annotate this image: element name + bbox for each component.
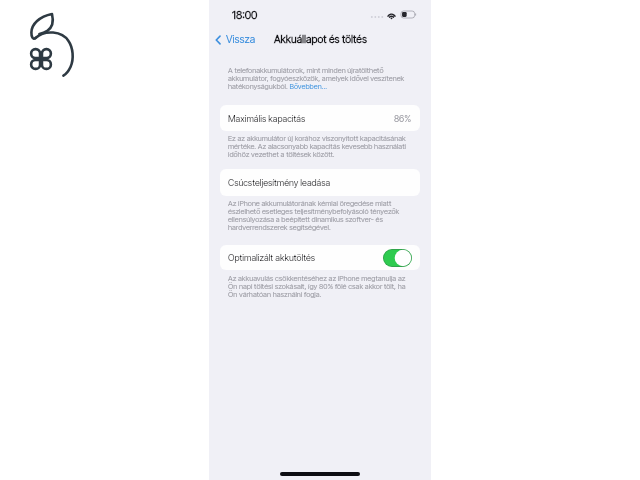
button[interactable]: Optimalizált akkutöltés <box>383 249 412 267</box>
staticText: 18:00 <box>232 8 258 21</box>
staticText: Maximális kapacitás <box>228 113 306 124</box>
other: Logó <box>24 9 94 79</box>
other: Wi‑Fi <box>387 12 396 19</box>
staticText: Az iPhone akkumulátorának kémiai öregedé… <box>228 199 413 232</box>
staticText: Vissza <box>226 33 256 46</box>
staticText: Ez az akkumulátor új korához viszonyítot… <box>228 134 413 159</box>
staticText: 86% <box>394 113 412 124</box>
other: Akkumulátor <box>401 11 416 18</box>
staticText: Akkuállapot és töltés <box>274 33 367 46</box>
staticText: Csúcsteljesítmény leadása <box>228 177 331 188</box>
button[interactable]: Optimalizált akkutöltés <box>220 245 420 270</box>
staticText: A telefonakkumulátorok, mint minden újra… <box>228 66 413 91</box>
staticText: Az akkuavulás csökkentéséhez az iPhone m… <box>228 274 413 299</box>
staticText: Optimalizált akkutöltés <box>228 252 316 263</box>
button[interactable]: Csúcsteljesítmény leadása <box>220 169 420 196</box>
button[interactable]: Maximális kapacitás <box>220 105 420 131</box>
button[interactable]: Vissza <box>210 31 261 48</box>
